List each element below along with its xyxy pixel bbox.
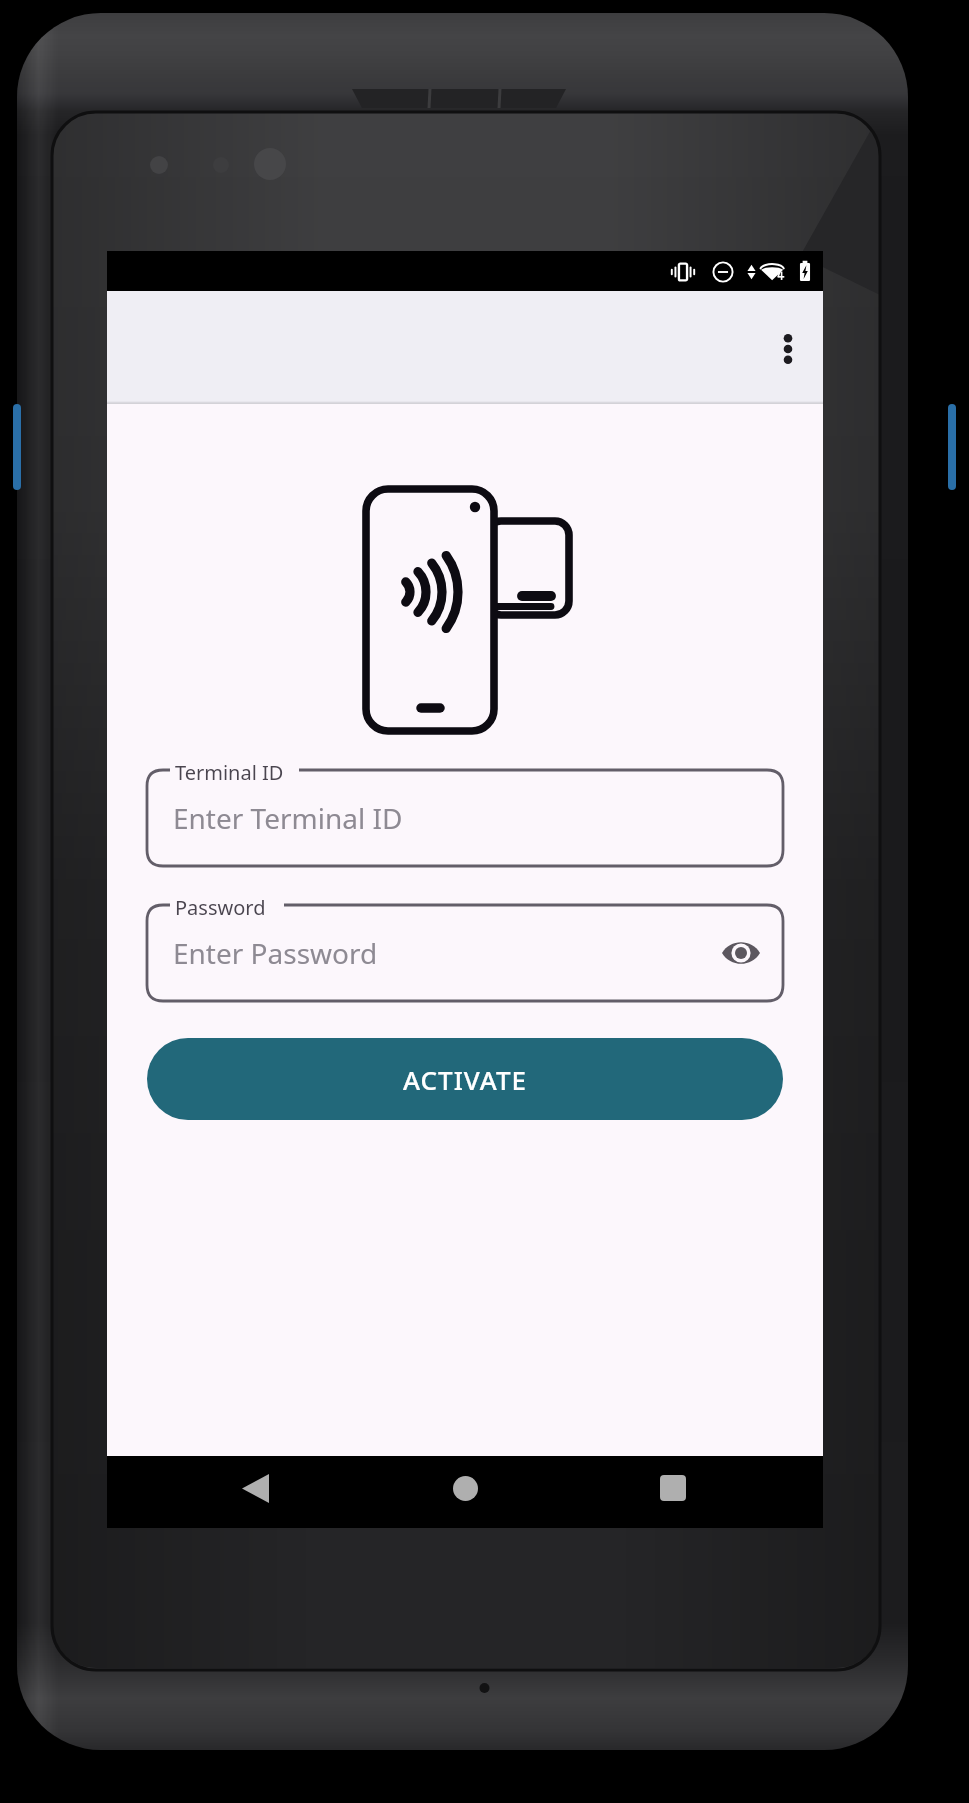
staticText: Password [175, 894, 266, 921]
staticText: Enter Password [173, 934, 378, 972]
button[interactable]: ACTIVATE [147, 1038, 783, 1120]
button[interactable]: Back [205, 1452, 305, 1524]
staticText: Enter Terminal ID [173, 799, 403, 837]
button[interactable]: Show password [715, 927, 767, 979]
staticText: ACTIVATE [403, 1062, 528, 1097]
button[interactable]: More options [759, 320, 817, 378]
button[interactable]: Recent apps [623, 1452, 723, 1524]
staticText: Terminal ID [175, 759, 284, 786]
button[interactable]: Home [415, 1452, 515, 1524]
